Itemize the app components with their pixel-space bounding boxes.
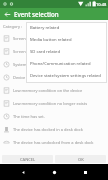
button[interactable]: The time has set. [0,110,108,123]
button[interactable]: Back [15,164,31,180]
staticText: Category : [3,24,23,29]
staticText: Low memory condition on the device [13,88,83,93]
button[interactable]: Screen has been turned off [0,45,108,58]
button[interactable]: Media button related [26,34,107,46]
staticText: Screen has been turned on [13,36,64,41]
staticText: The device has undocked from a desk dock [13,140,94,145]
staticText: OK [78,157,84,162]
button[interactable]: Battery related [26,22,107,34]
button[interactable]: Home [46,164,62,180]
staticText: Device state/system settings related [30,73,101,79]
staticText: Device storage is low [13,75,53,80]
button[interactable]: The device has docked in a desk dock [0,123,108,136]
staticText: Battery related [30,25,60,31]
button[interactable]: Device state/system settings related [26,70,107,82]
button[interactable]: Recents [77,164,93,180]
button[interactable]: Low memory condition on the device [0,84,108,97]
staticText: The time has set. [13,114,45,119]
staticText: Phone/Communication related [30,61,91,67]
button[interactable]: Device storage is low [0,71,108,84]
button[interactable]: Back [0,8,14,20]
staticText: Media button related [30,37,72,43]
staticText: Screen has been turned off [13,49,64,54]
staticText: System has fully booted [13,62,58,67]
staticText: SD card related [30,49,60,55]
button[interactable]: The device has undocked from a desk dock [0,136,108,149]
staticText: Event selection [14,10,59,18]
staticText: CANCEL [20,157,36,162]
button[interactable]: OK [55,155,106,163]
button[interactable]: Screen has been turned on [0,32,108,45]
staticText: The device has docked in a desk dock [13,127,83,132]
button[interactable]: System has fully booted [0,58,108,71]
button[interactable]: CANCEL [2,155,53,163]
button[interactable]: Phone/Communication related [26,58,107,70]
button[interactable]: Low memory condition no longer exists [0,97,108,110]
staticText: Low memory condition no longer exists [13,101,88,106]
staticText: 10:48 [96,2,107,7]
button[interactable]: SD card related [26,46,107,58]
